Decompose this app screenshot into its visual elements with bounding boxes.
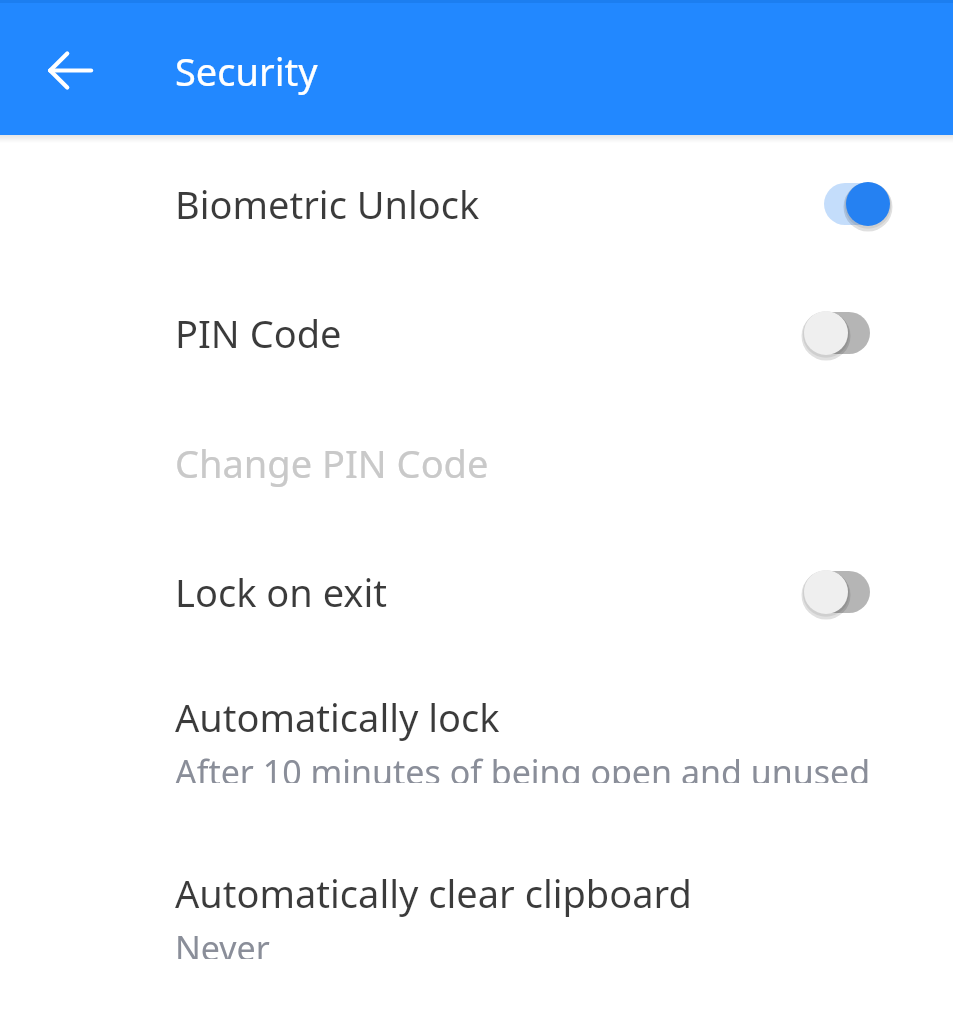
button[interactable]: Automatically clear clipboard [0,837,953,959]
staticText: Automatically lock [175,691,500,743]
staticText: Change PIN Code [175,437,489,489]
staticText: Security [175,45,318,97]
staticText: Lock on exit [175,566,800,618]
button[interactable]: Off [800,303,890,363]
button[interactable]: Back [47,48,92,93]
button[interactable]: Lock on exit [0,531,953,653]
staticText: Automatically clear clipboard [175,867,692,919]
staticText: After 10 minutes of being open and unuse… [175,749,871,783]
button[interactable]: On [800,174,890,234]
button[interactable]: Automatically lock [0,661,953,783]
button[interactable]: Off [800,562,890,622]
staticText: Biometric Unlock [175,178,800,230]
button[interactable]: Biometric Unlock [0,143,953,265]
staticText: PIN Code [175,307,800,359]
staticText: Never [175,925,270,959]
button[interactable]: PIN Code [0,272,953,394]
